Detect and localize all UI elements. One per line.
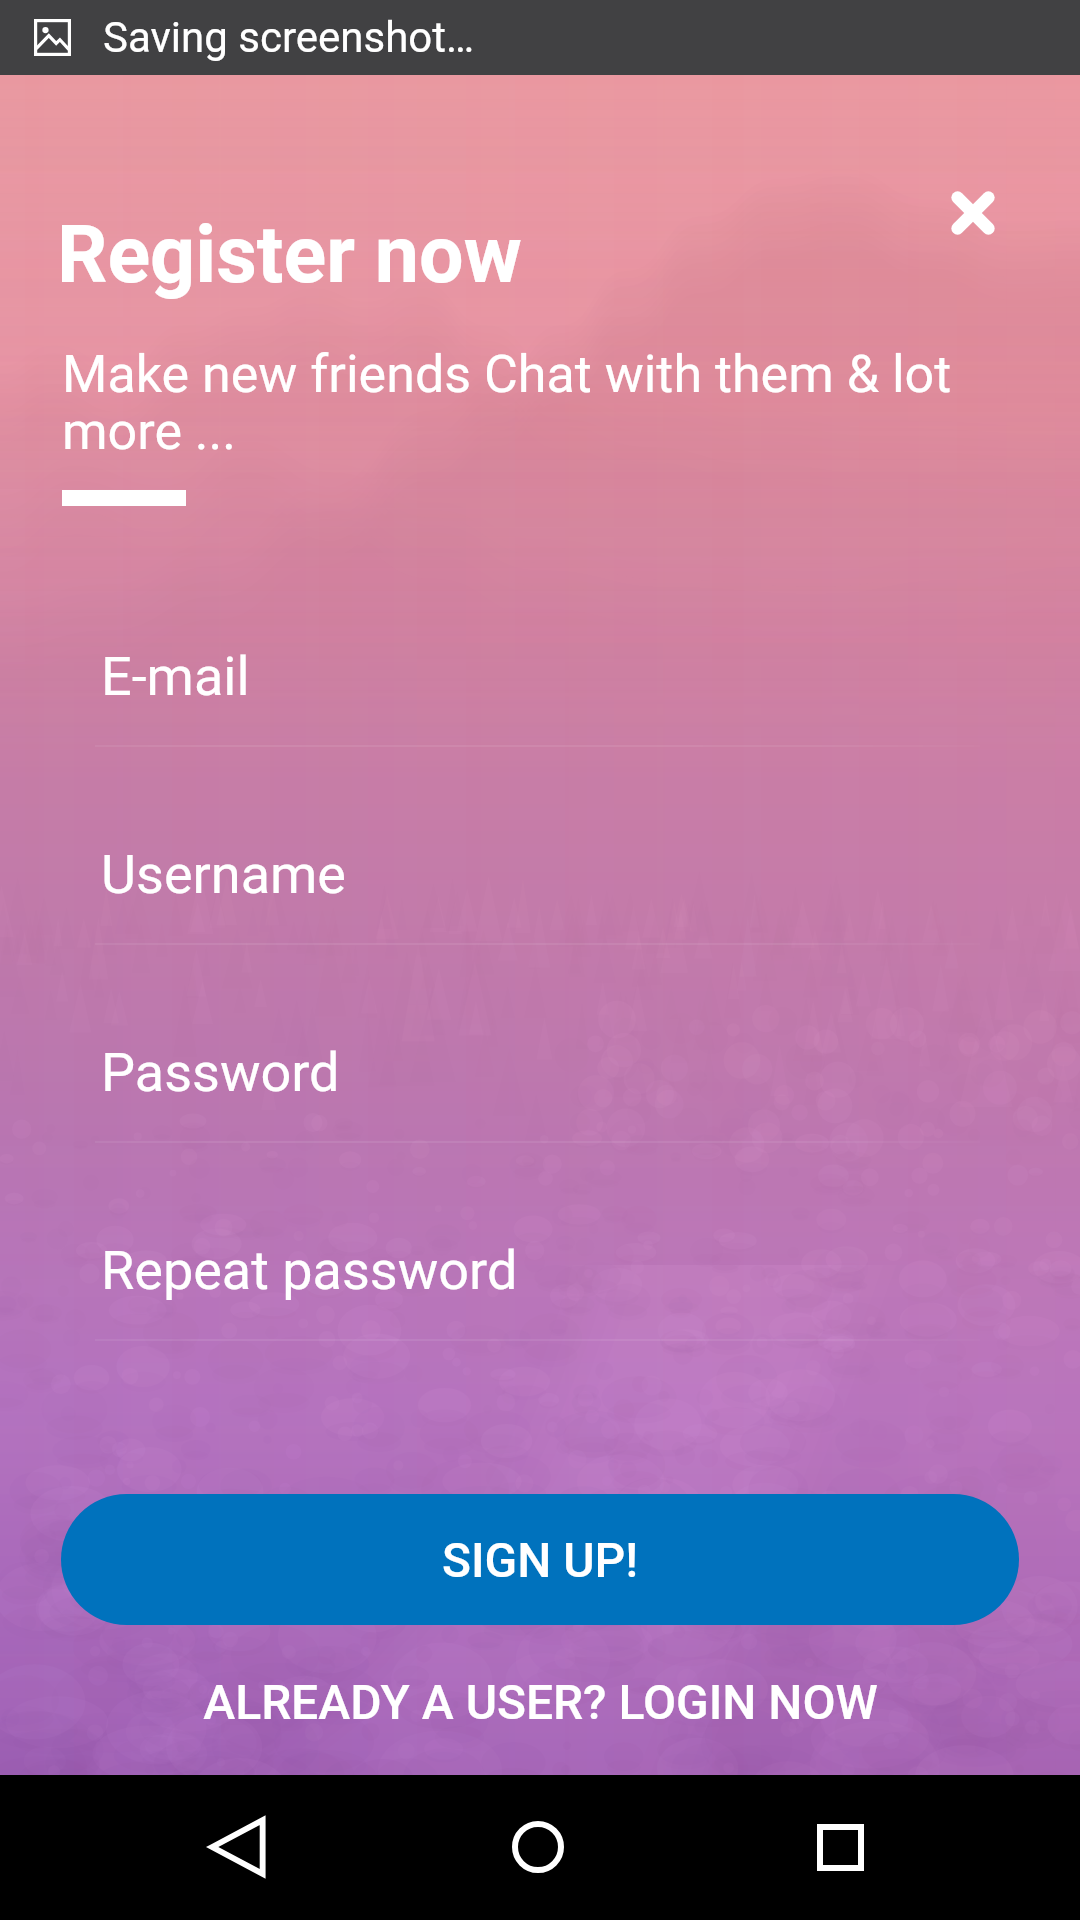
staticText: Register now: [57, 209, 522, 302]
staticText: Saving screenshot…: [103, 13, 475, 62]
staticText: Password: [101, 1041, 340, 1104]
button[interactable]: Home: [483, 1792, 593, 1902]
staticText: Make new friends Chat with them & lot mo…: [62, 344, 1000, 462]
staticText: Repeat password: [101, 1239, 518, 1302]
staticText: SIGN UP!: [442, 1532, 639, 1588]
button[interactable]: Back: [183, 1792, 293, 1902]
button[interactable]: Close: [923, 163, 1023, 263]
staticText: Username: [101, 843, 347, 906]
button[interactable]: Repeat password: [0, 1202, 1080, 1400]
staticText: E-mail: [101, 645, 250, 708]
button[interactable]: Recent apps: [785, 1792, 895, 1902]
staticText: ALREADY A USER? LOGIN NOW: [203, 1674, 878, 1730]
button[interactable]: E-mail: [0, 608, 1080, 806]
button[interactable]: Password: [0, 1004, 1080, 1202]
button[interactable]: ALREADY A USER? LOGIN NOW: [0, 1647, 1080, 1757]
button[interactable]: SIGN UP!: [61, 1494, 1019, 1625]
button[interactable]: Username: [0, 806, 1080, 1004]
